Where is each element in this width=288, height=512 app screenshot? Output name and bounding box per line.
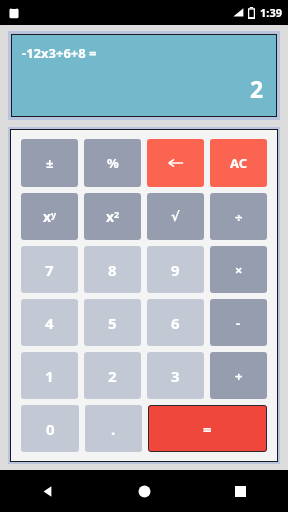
staticText: 3 bbox=[171, 366, 180, 386]
staticText: 2 bbox=[108, 366, 117, 386]
button[interactable]: 9 bbox=[147, 246, 204, 293]
staticText: 5 bbox=[108, 313, 117, 333]
button[interactable]: ± bbox=[21, 139, 78, 187]
button[interactable]: 6 bbox=[147, 299, 204, 346]
staticText: 1 bbox=[45, 366, 54, 386]
button[interactable]: 8 bbox=[84, 246, 141, 293]
button[interactable]: - bbox=[210, 299, 267, 346]
staticText: 7 bbox=[45, 260, 54, 280]
staticText: 0 bbox=[46, 419, 55, 439]
button[interactable]: Home bbox=[96, 470, 192, 512]
button[interactable]: 4 bbox=[21, 299, 78, 346]
button[interactable]: AC bbox=[210, 139, 267, 187]
button[interactable]: = bbox=[148, 405, 267, 452]
staticText: × bbox=[235, 261, 243, 279]
staticText: xy bbox=[43, 207, 57, 226]
staticText: 6 bbox=[171, 313, 180, 333]
button[interactable]: √ bbox=[147, 193, 204, 240]
staticText: ÷ bbox=[235, 208, 243, 226]
staticText: . bbox=[111, 419, 116, 439]
button[interactable]: 0 bbox=[21, 405, 79, 452]
staticText: 9 bbox=[171, 260, 180, 280]
staticText: -12x3÷6+8 = bbox=[22, 44, 97, 62]
staticText: √ bbox=[171, 209, 180, 224]
button[interactable]: 5 bbox=[84, 299, 141, 346]
staticText: % bbox=[107, 154, 119, 172]
staticText: = bbox=[203, 419, 212, 439]
button[interactable]: ÷ bbox=[210, 193, 267, 240]
staticText: 8 bbox=[108, 260, 117, 280]
button[interactable]: Back bbox=[0, 470, 96, 512]
button[interactable]: 3 bbox=[147, 352, 204, 399]
button[interactable]: 1 bbox=[21, 352, 78, 399]
button[interactable]: × bbox=[210, 246, 267, 293]
button[interactable]: 2 bbox=[84, 352, 141, 399]
staticText: - bbox=[236, 314, 241, 332]
staticText: AC bbox=[230, 154, 248, 172]
button[interactable]: Recent apps bbox=[192, 470, 288, 512]
button[interactable]: xy bbox=[21, 193, 78, 240]
button[interactable]: Backspace bbox=[147, 139, 204, 187]
staticText: ± bbox=[46, 154, 54, 172]
button[interactable]: + bbox=[210, 352, 267, 399]
staticText: + bbox=[235, 367, 243, 385]
staticText: 4 bbox=[45, 313, 54, 333]
button[interactable]: 7 bbox=[21, 246, 78, 293]
staticText: 2 bbox=[250, 73, 264, 104]
button[interactable]: x2 bbox=[84, 193, 141, 240]
staticText: 1:39 bbox=[260, 5, 282, 20]
button[interactable]: . bbox=[85, 405, 142, 452]
staticText: x2 bbox=[106, 207, 120, 226]
button[interactable]: % bbox=[84, 139, 141, 187]
